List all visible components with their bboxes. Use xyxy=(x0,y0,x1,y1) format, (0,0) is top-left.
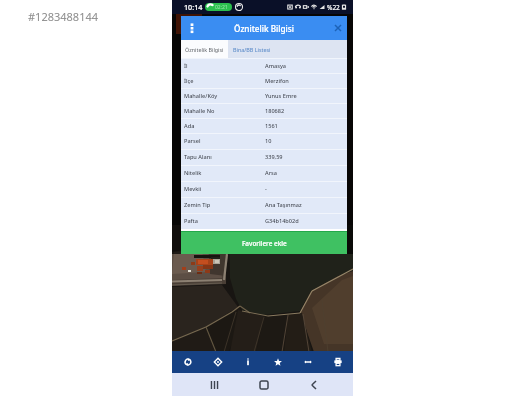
staticText: Mahalle No xyxy=(184,107,265,115)
button[interactable]: Öznitelik Bilgisi xyxy=(181,40,228,58)
staticText: 339,59 xyxy=(265,153,283,161)
staticText: İlçe xyxy=(184,77,265,85)
staticText: Parsel xyxy=(184,137,265,145)
button[interactable]: İlçe xyxy=(181,73,347,88)
staticText: - xyxy=(265,185,267,193)
button[interactable]: Print xyxy=(323,351,353,373)
staticText: Öznitelik Bilgisi xyxy=(185,46,224,53)
staticText: Zemin Tip xyxy=(184,201,265,209)
button[interactable]: Nitelik xyxy=(181,165,347,181)
button[interactable]: Mevkii xyxy=(181,181,347,197)
staticText: #1283488144 xyxy=(28,9,99,24)
button[interactable]: Close xyxy=(328,16,347,40)
button[interactable]: Recent apps xyxy=(205,373,222,396)
button[interactable]: Favorilere ekle xyxy=(181,231,347,254)
staticText: Favorilere ekle xyxy=(242,239,287,248)
button[interactable]: Back xyxy=(305,373,322,396)
button[interactable]: İl xyxy=(181,58,347,73)
staticText: Arsa xyxy=(265,169,277,177)
staticText: 10:14 xyxy=(184,2,203,12)
button[interactable]: Pafta xyxy=(181,213,347,229)
staticText: 180682 xyxy=(265,107,285,115)
button[interactable]: Mahalle/Köy xyxy=(181,88,347,103)
button[interactable]: Info xyxy=(233,351,263,373)
staticText: Mahalle/Köy xyxy=(184,92,265,100)
button[interactable]: Locate xyxy=(203,351,233,373)
staticText: Nitelik xyxy=(184,169,265,177)
button[interactable]: Zemin Tip xyxy=(181,197,347,213)
staticText: G34b14b02d xyxy=(265,217,299,225)
button[interactable]: Mahalle No xyxy=(181,103,347,118)
button[interactable]: Ada xyxy=(181,118,347,133)
staticText: Ada xyxy=(184,122,265,130)
staticText: Öznitelik Bilgisi xyxy=(234,23,294,34)
staticText: Yunus Emre xyxy=(265,92,297,100)
staticText: Pafta xyxy=(184,217,265,225)
button[interactable]: Favorite xyxy=(263,351,293,373)
button[interactable]: Tapu Alanı xyxy=(181,149,347,165)
staticText: Ana Taşınmaz xyxy=(265,201,302,209)
staticText: Mevkii xyxy=(184,185,265,193)
staticText: 10 xyxy=(265,137,272,145)
staticText: İl xyxy=(184,62,265,70)
staticText: %22 xyxy=(327,3,340,12)
button[interactable]: Parsel xyxy=(181,133,347,149)
button[interactable]: Measure xyxy=(293,351,323,373)
button[interactable]: More options xyxy=(181,16,202,40)
staticText: Tapu Alanı xyxy=(184,153,265,161)
staticText: Merzifon xyxy=(265,77,289,85)
staticText: Amasya xyxy=(265,62,287,70)
button[interactable]: Bina/BB Listesi xyxy=(228,40,347,58)
staticText: Bina/BB Listesi xyxy=(233,46,271,53)
button[interactable]: Refresh xyxy=(172,351,203,373)
staticText: 1561 xyxy=(265,122,278,130)
staticText: 02:21 xyxy=(215,4,228,11)
button[interactable]: Home xyxy=(255,373,272,396)
